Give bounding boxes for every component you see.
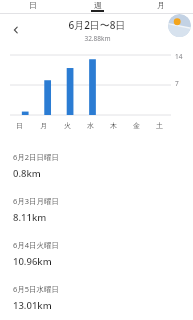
button[interactable]: 次の週: [167, 20, 187, 40]
staticText: 6月4日火曜日: [13, 240, 60, 250]
staticText: 10.96km: [13, 255, 52, 268]
button[interactable]: 6月2日〜8日: [68, 18, 126, 43]
staticText: 日: [29, 0, 37, 9]
button[interactable]: 6月5日水曜日: [0, 276, 193, 320]
button[interactable]: プロフィール: [168, 14, 191, 37]
staticText: 6月2日日曜日: [13, 152, 60, 162]
staticText: 0.8km: [13, 167, 41, 180]
button[interactable]: 前の週: [6, 20, 26, 40]
staticText: 木: [110, 121, 117, 130]
staticText: 13.01km: [13, 299, 52, 312]
staticText: 月: [157, 0, 165, 9]
button[interactable]: 6月2日日曜日: [0, 144, 193, 188]
staticText: 7: [175, 79, 179, 88]
button[interactable]: 週: [65, 0, 129, 14]
staticText: 6月3日月曜日: [13, 196, 60, 206]
staticText: 週: [94, 0, 102, 9]
button[interactable]: 6月3日月曜日: [0, 188, 193, 232]
staticText: 水: [87, 121, 94, 130]
staticText: 月: [40, 121, 47, 130]
staticText: 6月5日水曜日: [13, 284, 60, 294]
staticText: 8.11km: [13, 211, 47, 224]
button[interactable]: 6月4日火曜日: [0, 232, 193, 276]
staticText: 32.88km: [84, 34, 111, 43]
staticText: 金: [133, 121, 140, 130]
staticText: 6月2日〜8日: [68, 18, 126, 32]
staticText: 土: [156, 121, 163, 130]
staticText: 日: [16, 121, 23, 130]
button[interactable]: 月: [129, 0, 193, 14]
staticText: 14: [175, 52, 183, 61]
staticText: 火: [64, 121, 71, 130]
button[interactable]: 日: [0, 0, 65, 14]
